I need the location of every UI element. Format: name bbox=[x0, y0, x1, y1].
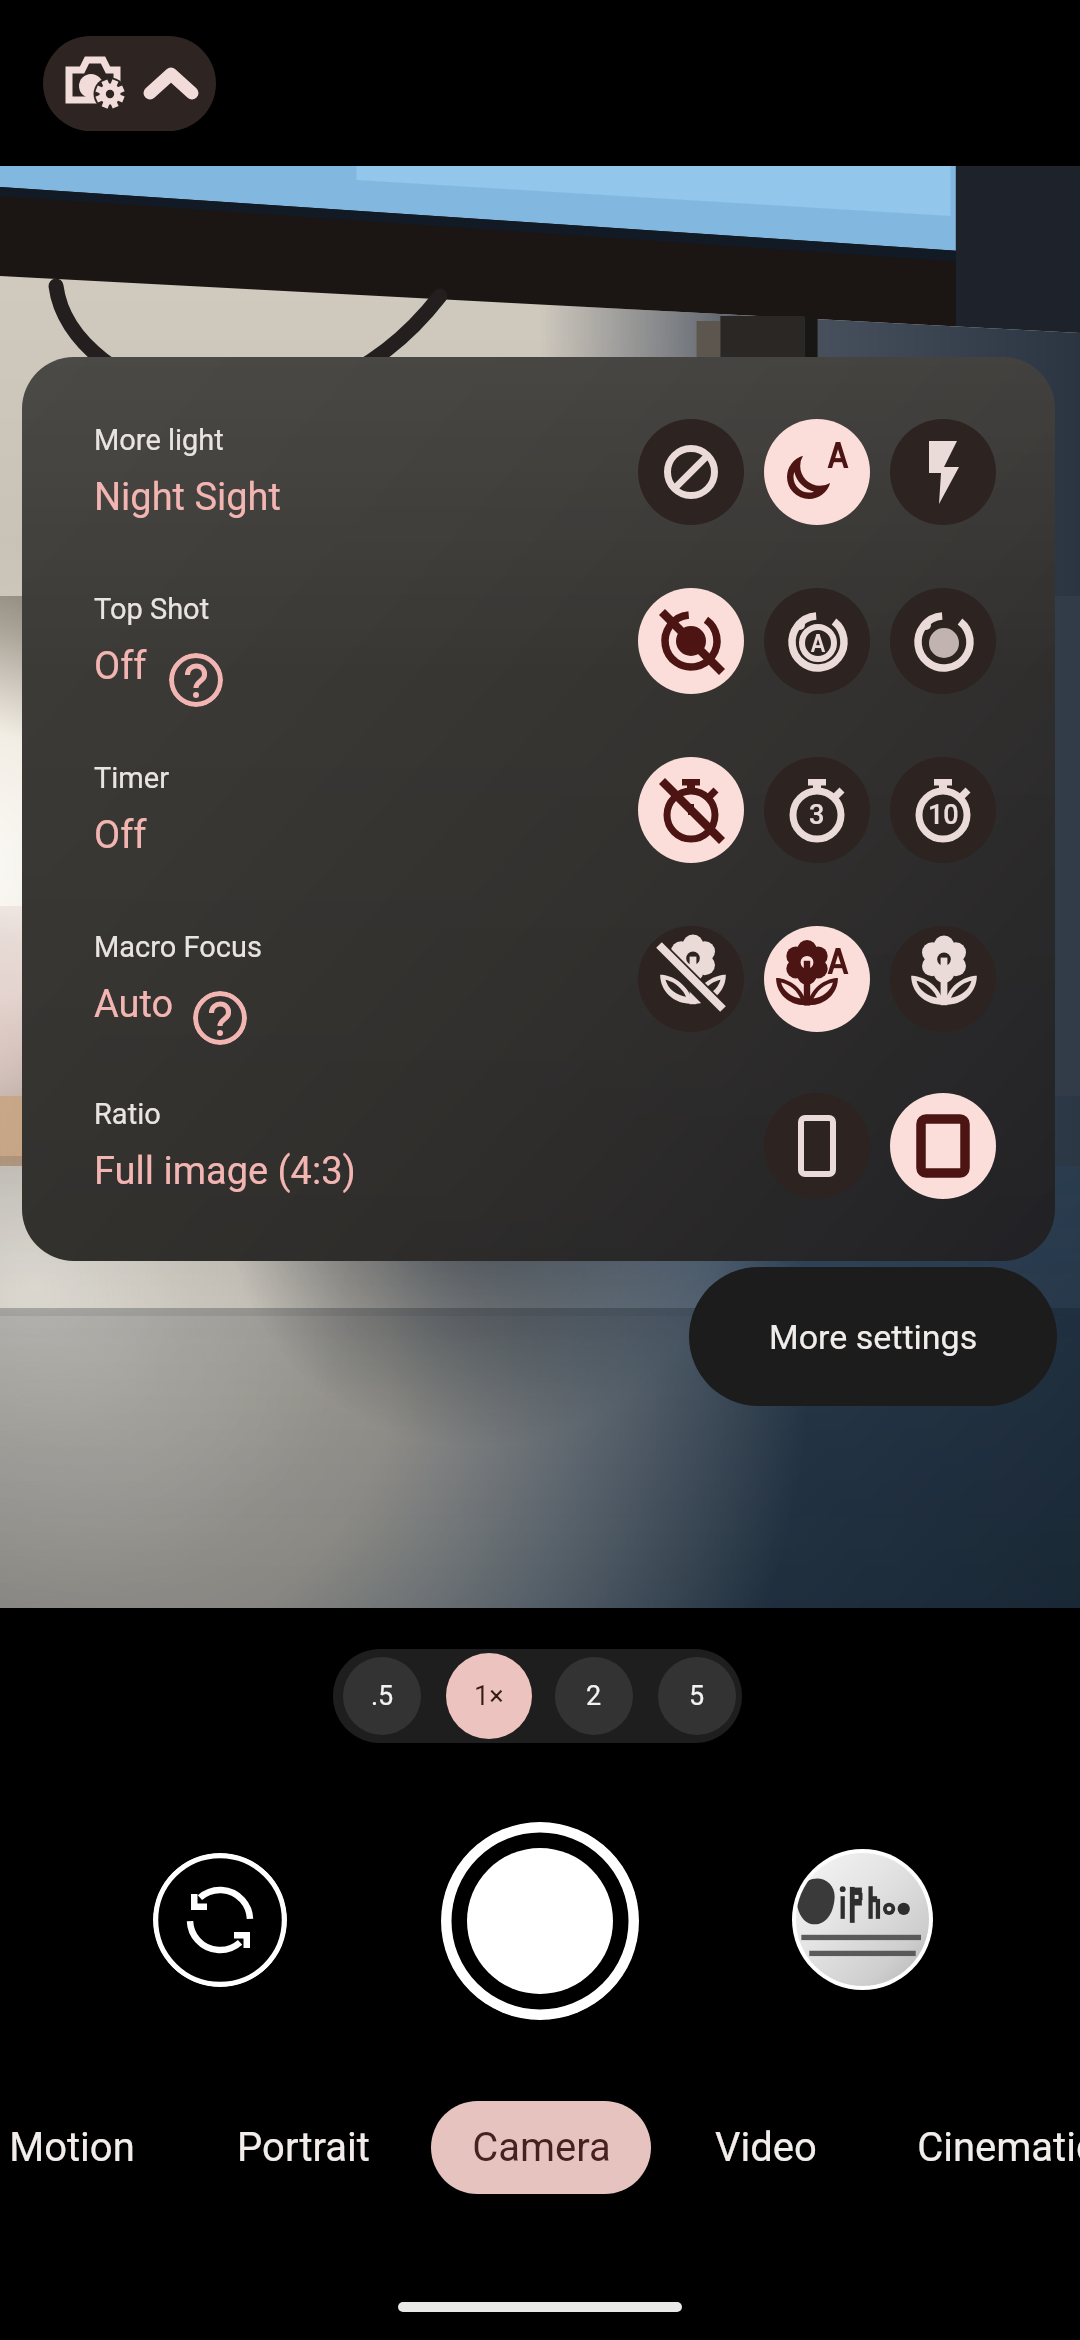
button[interactable]: Macro Focus option 3 bbox=[890, 926, 996, 1032]
staticText: Auto bbox=[94, 982, 174, 1027]
staticText: .5 bbox=[371, 1680, 394, 1712]
button[interactable]: Ratio option 2 bbox=[890, 1093, 996, 1199]
staticText: More settings bbox=[769, 1317, 978, 1357]
button[interactable]: More light option 1 bbox=[638, 419, 744, 525]
button[interactable]: Gallery bbox=[792, 1849, 933, 1990]
button[interactable]: .5 bbox=[343, 1657, 421, 1735]
button[interactable]: 5 bbox=[658, 1657, 736, 1735]
button[interactable]: Ratio option 1 bbox=[764, 1093, 870, 1199]
staticText: Video bbox=[715, 2124, 817, 2171]
button[interactable]: Portrait bbox=[188, 2101, 418, 2194]
staticText: 5 bbox=[689, 1680, 705, 1712]
button[interactable]: Switch camera bbox=[153, 1853, 287, 1987]
button[interactable]: 1× bbox=[446, 1653, 532, 1739]
button[interactable]: Timer option 1 bbox=[638, 757, 744, 863]
staticText: Cinematic bbox=[917, 2124, 1080, 2171]
staticText: Full image (4:3) bbox=[94, 1149, 356, 1194]
button[interactable]: More light option 3 bbox=[890, 419, 996, 525]
staticText: Portrait bbox=[237, 2124, 370, 2171]
staticText: 10 bbox=[928, 799, 959, 831]
button[interactable]: Macro Focus option 2 bbox=[764, 926, 870, 1032]
button[interactable]: Top Shot option 3 bbox=[890, 588, 996, 694]
button[interactable]: Take photo bbox=[441, 1822, 639, 2020]
staticText: 2 bbox=[586, 1680, 602, 1712]
button[interactable]: 2 bbox=[555, 1657, 633, 1735]
staticText: 1× bbox=[474, 1680, 504, 1712]
staticText: Off bbox=[94, 813, 147, 858]
staticText: Night Sight bbox=[94, 475, 281, 520]
button[interactable]: Timer option 2 bbox=[764, 757, 870, 863]
button[interactable]: Help about Macro Focus bbox=[193, 991, 247, 1045]
staticText: Top Shot bbox=[94, 592, 210, 626]
button[interactable]: More light option 2 bbox=[764, 419, 870, 525]
button[interactable]: Camera bbox=[431, 2101, 651, 2194]
button[interactable]: Help about Top Shot bbox=[169, 653, 223, 707]
button[interactable]: Timer option 3 bbox=[890, 757, 996, 863]
button[interactable]: Top Shot option 1 bbox=[638, 588, 744, 694]
button[interactable]: Top Shot option 2 bbox=[764, 588, 870, 694]
button[interactable]: Cinematic bbox=[892, 2101, 1080, 2194]
button[interactable]: Video bbox=[651, 2101, 881, 2194]
button[interactable]: Macro Focus option 1 bbox=[638, 926, 744, 1032]
staticText: More light bbox=[94, 423, 224, 457]
staticText: Ratio bbox=[94, 1097, 161, 1131]
button[interactable]: More settings bbox=[689, 1267, 1057, 1406]
staticText: 3 bbox=[809, 799, 825, 831]
staticText: Off bbox=[94, 644, 147, 689]
button[interactable]: Camera settings bbox=[43, 36, 216, 131]
staticText: Timer bbox=[94, 761, 169, 795]
staticText: Motion bbox=[9, 2124, 135, 2171]
button[interactable]: Motion bbox=[0, 2101, 187, 2194]
staticText: Camera bbox=[472, 2124, 611, 2171]
staticText: Macro Focus bbox=[94, 930, 262, 964]
